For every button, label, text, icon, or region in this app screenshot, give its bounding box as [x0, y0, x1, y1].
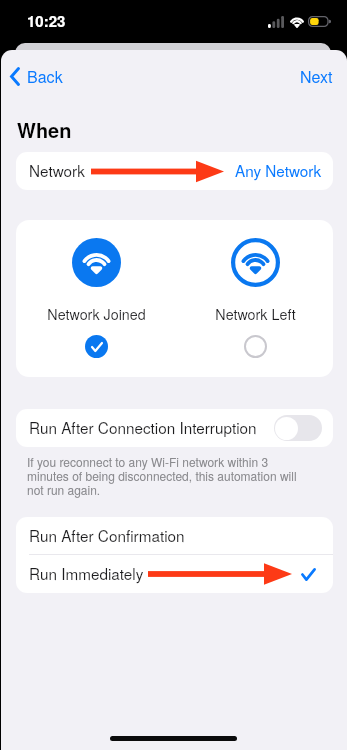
staticText: Run After Connection Interruption — [29, 416, 257, 438]
staticText: Next — [300, 65, 333, 88]
button[interactable]: Network Left — [176, 220, 333, 377]
staticText: 10:23 — [27, 10, 66, 31]
staticText: Network Left — [215, 304, 296, 324]
button[interactable]: Run After Connection Interruption, off — [274, 415, 322, 441]
staticText: When — [17, 115, 72, 144]
button[interactable]: Back — [4, 61, 71, 92]
other: Cellular signal — [268, 16, 284, 28]
other: Network Joined selected — [85, 335, 108, 358]
other: Battery, low power mode — [308, 16, 331, 27]
button[interactable]: Network — [16, 152, 333, 190]
button[interactable]: Next — [294, 61, 339, 92]
staticText: Run Immediately — [29, 562, 144, 584]
button[interactable]: Run Immediately — [16, 555, 333, 593]
staticText: Run After Confirmation — [29, 524, 185, 546]
other: Wi-Fi — [289, 16, 305, 28]
button[interactable]: Network Joined — [16, 220, 176, 377]
staticText: Any Network — [235, 159, 322, 181]
staticText: Back — [27, 65, 63, 88]
staticText: If you reconnect to any Wi-Fi network wi… — [27, 453, 312, 499]
button[interactable]: Run After Confirmation — [16, 517, 333, 554]
button[interactable]: Run After Connection Interruption — [16, 409, 333, 447]
staticText: Network Joined — [47, 304, 146, 324]
other: Network Left not selected — [244, 335, 267, 358]
staticText: Network — [29, 159, 85, 181]
